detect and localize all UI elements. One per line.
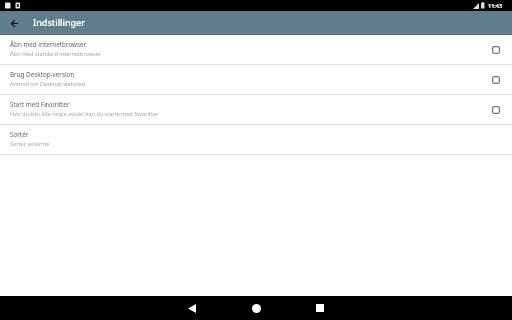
staticText: Sortér aviserne [10, 140, 50, 147]
staticText: Åbn med internetbrowser [10, 40, 87, 49]
staticText: Brug Desktop-version [10, 70, 75, 79]
button[interactable]: Brug Desktop-version [0, 65, 512, 95]
staticText: Hvis du kan lide nogle aviser, kan du st… [10, 110, 159, 117]
button[interactable] [308, 296, 332, 320]
staticText: Anmod om Desktop-websted [10, 80, 86, 87]
staticText: 11:43 [488, 2, 503, 9]
staticText: Åbn med standard internetbrowser [10, 50, 102, 57]
button[interactable]: Start med Favoritter [0, 95, 512, 125]
button[interactable] [244, 296, 268, 320]
button[interactable] [180, 296, 204, 320]
button[interactable] [4, 13, 25, 34]
button[interactable]: Sortér [0, 125, 512, 155]
staticText: Indstillinger [33, 16, 86, 28]
button[interactable]: Åbn med internetbrowser [0, 35, 512, 65]
staticText: Sortér [10, 130, 29, 139]
staticText: Start med Favoritter [10, 100, 70, 109]
